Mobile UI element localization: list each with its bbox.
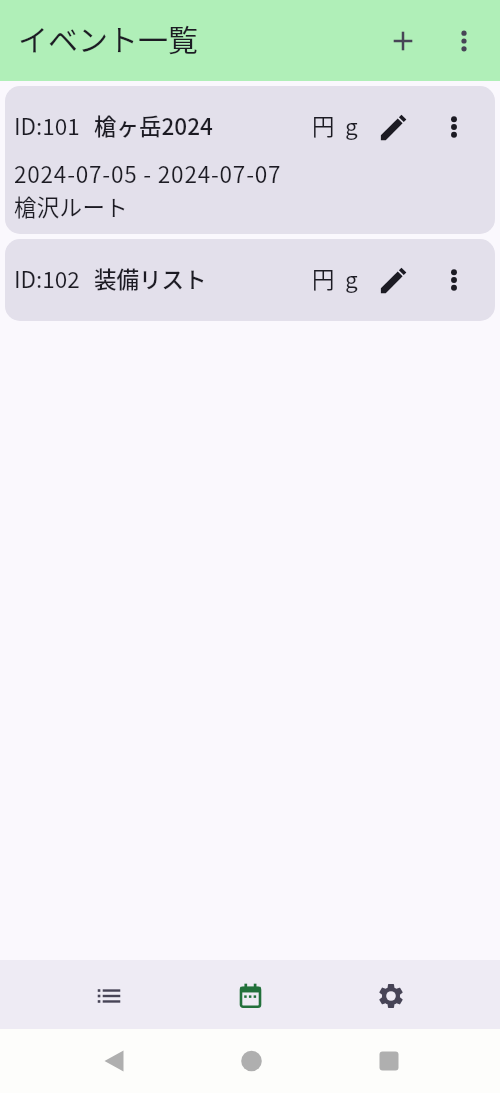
button[interactable]: ID:102 [5, 239, 495, 321]
button[interactable]: More [436, 108, 472, 144]
button[interactable]: Add [380, 18, 426, 64]
button[interactable]: List [77, 963, 141, 1027]
staticText: 装備リスト [94, 262, 207, 295]
staticText: 円 [312, 262, 335, 295]
staticText: 槍ヶ岳2024 [94, 109, 213, 142]
staticText: ID:102 [14, 262, 80, 295]
button[interactable]: Edit [376, 261, 412, 297]
staticText: 円 [312, 109, 335, 142]
staticText: g [345, 262, 358, 295]
staticText: 2024-07-05 - 2024-07-07 [14, 157, 282, 190]
staticText: 槍沢ルート [14, 190, 129, 223]
button[interactable]: More options [441, 18, 487, 64]
staticText: ID:101 [14, 109, 80, 142]
staticText: g [345, 109, 358, 142]
button[interactable]: Edit [376, 108, 412, 144]
button[interactable]: ID:101 [5, 86, 495, 234]
button[interactable]: More [436, 261, 472, 297]
staticText: イベント一覧 [18, 16, 198, 59]
button[interactable]: Calendar [218, 963, 282, 1027]
button[interactable]: Settings [359, 963, 423, 1027]
